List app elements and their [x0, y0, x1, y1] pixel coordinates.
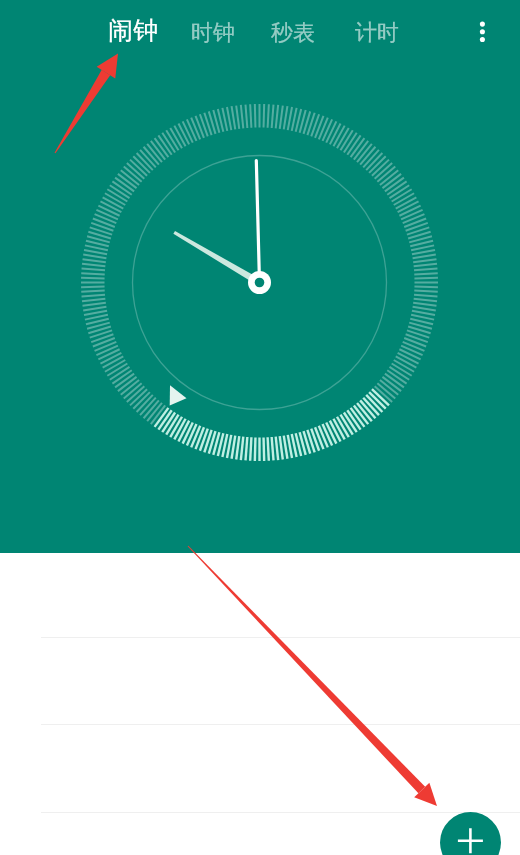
button[interactable]: 计时 [355, 19, 399, 47]
staticText: 计时 [355, 19, 399, 47]
button[interactable]: Add alarm [440, 812, 501, 855]
button[interactable] [0, 725, 520, 813]
button[interactable]: 秒表 [271, 19, 315, 47]
button[interactable]: 闹钟 [108, 15, 158, 46]
button[interactable]: 时钟 [191, 19, 235, 47]
staticText: 闹钟 [108, 15, 158, 46]
button[interactable] [0, 638, 520, 725]
button[interactable]: More options [458, 8, 506, 56]
staticText: 秒表 [271, 19, 315, 47]
staticText: 时钟 [191, 19, 235, 47]
button[interactable] [0, 553, 520, 638]
